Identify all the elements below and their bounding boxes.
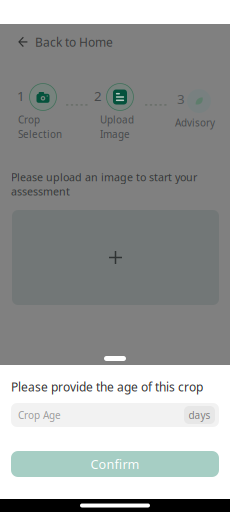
staticText: 2 — [94, 87, 102, 105]
staticText: days — [188, 408, 210, 422]
button[interactable]: Confirm — [11, 451, 219, 477]
staticText: Back to Home — [35, 34, 113, 50]
staticText: 1 — [17, 87, 25, 105]
button[interactable]: Back to Home — [12, 30, 119, 54]
staticText: Please provide the age of this crop — [11, 379, 203, 395]
staticText: Crop — [18, 113, 40, 126]
staticText: Upload — [100, 113, 134, 126]
staticText: Please upload an image to start your ass… — [11, 170, 197, 198]
staticText: Crop Age — [18, 408, 61, 422]
staticText: Image — [100, 127, 130, 141]
staticText: Selection — [18, 127, 62, 141]
staticText: Advisory — [175, 116, 215, 129]
staticText: 3 — [177, 90, 185, 108]
staticText: Confirm — [90, 455, 139, 473]
